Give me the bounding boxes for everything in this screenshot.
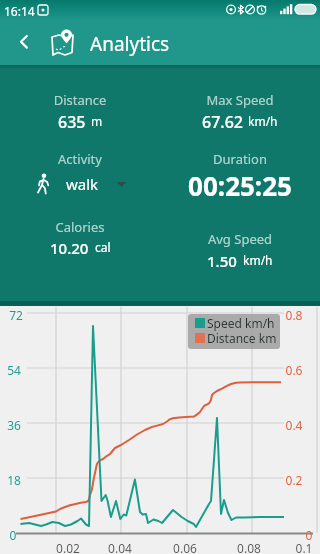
- staticText: 54: [3, 362, 25, 378]
- staticText: km/h: [248, 113, 278, 129]
- staticText: Calories: [0, 218, 160, 236]
- staticText: 16:14: [4, 3, 35, 19]
- staticText: 67.62: [202, 111, 243, 131]
- staticText: cal: [95, 239, 111, 255]
- staticText: 36: [3, 417, 25, 433]
- staticText: 10.20: [50, 238, 89, 256]
- staticText: Activity: [0, 150, 160, 168]
- button[interactable]: [49, 29, 77, 57]
- staticText: 0.02: [52, 540, 84, 554]
- staticText: Speed km/h: [207, 315, 275, 331]
- button[interactable]: walk: [0, 171, 160, 197]
- staticText: km/h: [243, 252, 273, 268]
- staticText: 1.50: [207, 251, 237, 269]
- staticText: Avg Speed: [160, 230, 320, 248]
- staticText: 0.6: [282, 362, 306, 378]
- button[interactable]: [0, 20, 44, 65]
- staticText: 635: [58, 111, 86, 131]
- staticText: 0.2: [282, 472, 306, 488]
- staticText: 0.1: [288, 540, 320, 554]
- staticText: Analytics: [90, 31, 170, 57]
- staticText: Max Speed: [160, 91, 320, 109]
- staticText: 0.8: [282, 307, 306, 323]
- staticText: Duration: [160, 150, 320, 168]
- staticText: walk: [66, 174, 99, 194]
- staticText: Distance: [0, 91, 160, 109]
- staticText: 0.06: [169, 540, 201, 554]
- staticText: m: [91, 113, 103, 129]
- staticText: 0: [300, 527, 318, 543]
- staticText: 0.04: [104, 540, 136, 554]
- staticText: 0.4: [282, 417, 306, 433]
- staticText: 0: [4, 527, 22, 543]
- staticText: 0.08: [233, 540, 265, 554]
- staticText: 00:25:25: [160, 168, 320, 203]
- button[interactable]: Speed km/h: [188, 314, 280, 349]
- staticText: Distance km: [207, 330, 277, 346]
- staticText: 18: [3, 472, 25, 488]
- staticText: 72: [5, 307, 27, 323]
